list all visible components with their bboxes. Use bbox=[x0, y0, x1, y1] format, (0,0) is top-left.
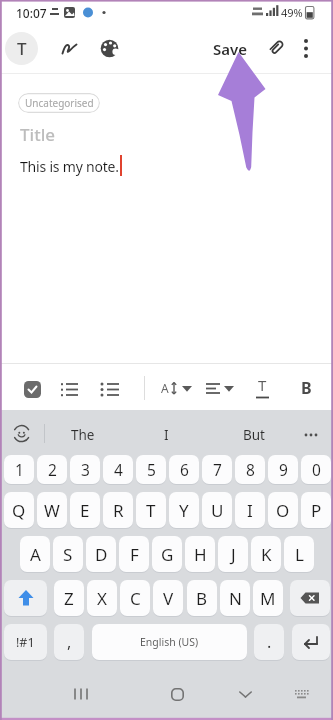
staticText: T bbox=[146, 499, 156, 522]
staticText: 0 bbox=[312, 459, 321, 480]
button[interactable]: H bbox=[185, 536, 215, 572]
button[interactable] bbox=[97, 36, 122, 61]
button[interactable]: 3 bbox=[70, 455, 100, 484]
button[interactable]: 9 bbox=[268, 455, 298, 484]
button[interactable] bbox=[292, 624, 330, 660]
staticText: S bbox=[63, 543, 73, 566]
button[interactable]: X bbox=[87, 580, 117, 616]
button[interactable]: T bbox=[247, 372, 278, 403]
staticText: H bbox=[194, 543, 207, 566]
staticText: M bbox=[260, 587, 276, 610]
button[interactable]: O bbox=[268, 492, 298, 528]
button[interactable]: 2 bbox=[37, 455, 67, 484]
button[interactable]: B bbox=[291, 372, 322, 403]
button[interactable]: Uncategorised bbox=[18, 93, 100, 113]
staticText: V bbox=[163, 587, 174, 610]
button[interactable]: B bbox=[187, 580, 217, 616]
button[interactable] bbox=[284, 678, 318, 710]
button[interactable]: V bbox=[153, 580, 183, 616]
button[interactable]: K bbox=[251, 536, 281, 572]
button[interactable]: 4 bbox=[103, 455, 133, 484]
button[interactable]: I bbox=[141, 413, 191, 457]
staticText: 9 bbox=[279, 459, 288, 480]
button[interactable]: T bbox=[5, 32, 38, 65]
button[interactable]: 6 bbox=[169, 455, 199, 484]
button[interactable] bbox=[93, 373, 126, 406]
button[interactable]: L bbox=[284, 536, 314, 572]
staticText: Uncategorised bbox=[25, 96, 94, 110]
button[interactable]: 5 bbox=[136, 455, 166, 484]
button[interactable] bbox=[53, 373, 86, 406]
staticText: K bbox=[261, 543, 272, 566]
button[interactable]: A bbox=[154, 373, 198, 415]
staticText: A bbox=[161, 380, 169, 396]
button[interactable]: M bbox=[253, 580, 283, 616]
button[interactable]: 7 bbox=[202, 455, 232, 484]
button[interactable] bbox=[62, 678, 100, 710]
staticText: This is my note. bbox=[20, 157, 119, 176]
staticText: Y bbox=[179, 499, 189, 522]
button[interactable]: !#1 bbox=[4, 624, 47, 660]
staticText: T bbox=[17, 37, 27, 60]
button[interactable] bbox=[226, 678, 264, 710]
button[interactable]: J bbox=[218, 536, 248, 572]
staticText: D bbox=[95, 543, 108, 566]
staticText: 3 bbox=[81, 459, 90, 480]
button[interactable]: C bbox=[120, 580, 150, 616]
button[interactable]: U bbox=[202, 492, 232, 528]
staticText: 6 bbox=[180, 459, 189, 480]
button[interactable]: 1 bbox=[4, 455, 34, 484]
staticText: J bbox=[231, 543, 236, 566]
button[interactable]: W bbox=[37, 492, 67, 528]
button[interactable]: . bbox=[254, 624, 284, 660]
button[interactable]: Z bbox=[54, 580, 84, 616]
staticText: E bbox=[80, 499, 90, 522]
button[interactable]: R bbox=[103, 492, 133, 528]
staticText: Save bbox=[213, 39, 248, 59]
button[interactable] bbox=[56, 35, 84, 63]
button[interactable]: Q bbox=[4, 492, 34, 528]
staticText: L bbox=[295, 543, 304, 566]
staticText: , bbox=[67, 631, 72, 653]
button[interactable] bbox=[198, 373, 238, 415]
button[interactable] bbox=[295, 33, 317, 64]
staticText: Title bbox=[20, 123, 56, 146]
staticText: U bbox=[211, 499, 224, 522]
button[interactable] bbox=[11, 423, 33, 445]
staticText: Z bbox=[64, 587, 74, 610]
staticText: T bbox=[258, 375, 267, 395]
button[interactable]: G bbox=[152, 536, 182, 572]
button[interactable] bbox=[158, 678, 196, 710]
button[interactable]: 8 bbox=[235, 455, 265, 484]
button[interactable]: N bbox=[220, 580, 250, 616]
button[interactable]: I bbox=[235, 492, 265, 528]
staticText: !#1 bbox=[16, 634, 35, 651]
button[interactable] bbox=[290, 580, 330, 616]
button[interactable]: D bbox=[86, 536, 116, 572]
button[interactable]: 0 bbox=[301, 455, 331, 484]
button[interactable]: P bbox=[301, 492, 331, 528]
staticText: The bbox=[71, 426, 95, 444]
button[interactable] bbox=[296, 413, 326, 457]
staticText: P bbox=[311, 499, 322, 522]
button[interactable]: S bbox=[53, 536, 83, 572]
button[interactable]: T bbox=[136, 492, 166, 528]
button[interactable]: Y bbox=[169, 492, 199, 528]
button[interactable] bbox=[4, 580, 47, 616]
button[interactable]: A bbox=[20, 536, 50, 572]
button[interactable]: F bbox=[119, 536, 149, 572]
staticText: I bbox=[247, 499, 253, 522]
button[interactable]: But bbox=[229, 413, 279, 457]
staticText: R bbox=[113, 499, 124, 522]
button[interactable]: E bbox=[70, 492, 100, 528]
staticText: But bbox=[243, 426, 265, 444]
button[interactable]: Save bbox=[207, 30, 254, 67]
button[interactable]: The bbox=[55, 413, 110, 457]
button[interactable]: , bbox=[54, 624, 84, 660]
staticText: I bbox=[164, 426, 169, 444]
button[interactable]: English (US) bbox=[92, 624, 247, 660]
button[interactable] bbox=[16, 373, 50, 407]
staticText: 7 bbox=[213, 459, 222, 480]
button[interactable] bbox=[263, 34, 290, 61]
staticText: 49% bbox=[281, 5, 303, 20]
